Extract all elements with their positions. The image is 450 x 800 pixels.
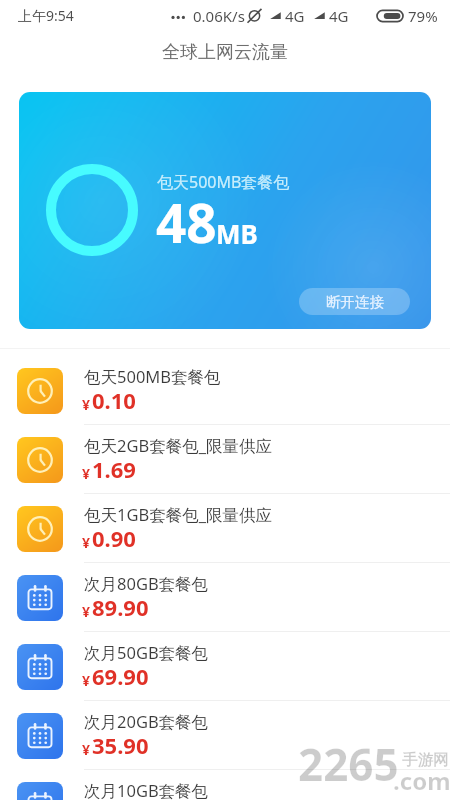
staticText: 包天500MB套餐包 [157, 171, 290, 193]
staticText: ¥ [82, 533, 91, 552]
staticText: 断开连接 [326, 293, 384, 311]
staticText: 次月50GB套餐包 [84, 641, 209, 664]
staticText: 48 [156, 186, 217, 258]
staticText: ¥ [82, 395, 91, 414]
button[interactable]: 包天2GB套餐包_限量供应 [0, 425, 450, 494]
staticText: 包天1GB套餐包_限量供应 [84, 503, 273, 526]
staticText: 次月80GB套餐包 [84, 572, 209, 595]
staticText: 手游网 [402, 750, 449, 770]
staticText: ¥ [82, 602, 91, 621]
staticText: 79% [408, 6, 438, 26]
staticText: 1.69 [92, 454, 136, 484]
staticText: ¥ [82, 464, 91, 483]
staticText: 0.10 [92, 385, 136, 415]
staticText: 次月20GB套餐包 [84, 710, 209, 733]
staticText: 89.90 [92, 592, 149, 622]
staticText: 次月10GB套餐包 [84, 779, 209, 800]
button[interactable]: 次月20GB套餐包 [0, 701, 450, 770]
staticText: 包天2GB套餐包_限量供应 [84, 434, 273, 457]
button[interactable]: 次月10GB套餐包 [0, 770, 450, 800]
staticText: ¥ [82, 671, 91, 690]
button[interactable]: 包天1GB套餐包_限量供应 [0, 494, 450, 563]
staticText: 4G [329, 6, 349, 26]
button[interactable]: 次月50GB套餐包 [0, 632, 450, 701]
staticText: 2265 [298, 734, 399, 794]
staticText: MB [216, 216, 258, 251]
button[interactable]: 断开连接 [299, 288, 410, 315]
staticText: 0.06K/s [193, 6, 245, 26]
staticText: 上午9:54 [18, 6, 74, 25]
staticText: 69.90 [92, 661, 149, 691]
staticText: 0.90 [92, 523, 136, 553]
button[interactable]: 包天500MB套餐包 [0, 356, 450, 425]
staticText: ¥ [82, 740, 91, 759]
staticText: 全球上网云流量 [162, 41, 288, 64]
staticText: 35.90 [92, 730, 149, 760]
staticText: 包天500MB套餐包 [84, 365, 221, 388]
staticText: .com [393, 764, 450, 797]
button[interactable]: 次月80GB套餐包 [0, 563, 450, 632]
staticText: 4G [285, 6, 305, 26]
